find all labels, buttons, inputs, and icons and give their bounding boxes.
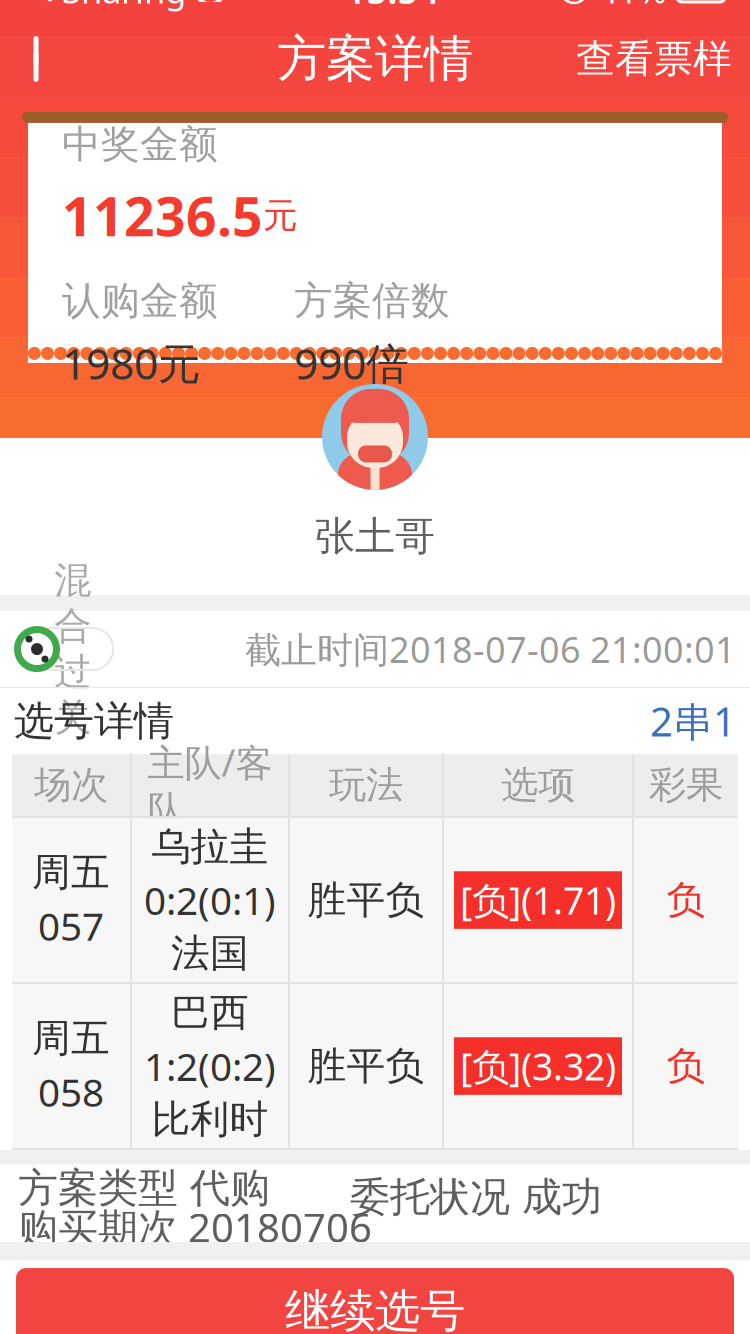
- staticText: 混合过关: [54, 557, 91, 741]
- staticText: 胜平负: [307, 1042, 424, 1090]
- staticText: 周五: [32, 1015, 110, 1062]
- staticText: 选项: [501, 762, 575, 808]
- staticText: 1980元: [62, 334, 201, 391]
- staticText: 方案倍数: [294, 277, 450, 324]
- staticText: 认购金额: [62, 277, 218, 324]
- staticText: [负]: [460, 875, 521, 925]
- staticText: 058: [38, 1066, 104, 1117]
- button[interactable]: 查看票样: [558, 15, 750, 103]
- button[interactable]: 继续选号: [16, 1268, 734, 1334]
- staticText: (3.32): [521, 1041, 616, 1091]
- staticText: 2串1: [650, 694, 736, 748]
- staticText: 990倍: [294, 334, 409, 391]
- staticText: 方案详情: [277, 29, 473, 89]
- staticText: 15:54: [345, 0, 439, 14]
- staticText: 方案类型 代购: [18, 1163, 270, 1213]
- staticText: [负]: [460, 1041, 521, 1091]
- staticText: 主队/客队: [147, 737, 272, 833]
- staticText: 11236.5: [62, 180, 263, 251]
- button[interactable]: 返回: [0, 15, 86, 103]
- staticText: 委托状况 成功: [350, 1172, 602, 1222]
- staticText: 继续选号: [285, 1283, 465, 1334]
- staticText: Sharing: [62, 0, 186, 13]
- staticText: 张土哥: [315, 512, 435, 561]
- staticText: 查看票样: [576, 35, 732, 83]
- staticText: 负: [666, 876, 705, 924]
- staticText: 选号详情: [14, 696, 174, 746]
- staticText: 周五: [32, 849, 110, 896]
- staticText: 057: [38, 900, 104, 951]
- staticText: 1:2(0:2): [144, 1040, 276, 1092]
- staticText: 0:2(0:1): [144, 874, 276, 926]
- staticText: 购买期次 20180706: [18, 1200, 372, 1254]
- staticText: 彩果: [649, 762, 723, 808]
- staticText: (1.71): [521, 875, 616, 925]
- staticText: 41%: [598, 0, 667, 13]
- staticText: 元: [263, 194, 298, 237]
- staticText: 负: [666, 1042, 705, 1090]
- staticText: 乌拉圭: [151, 823, 268, 870]
- staticText: 比利时: [151, 1096, 268, 1143]
- staticText: 截止时间2018-07-06 21:00:01: [245, 625, 736, 673]
- staticText: 玩法: [329, 762, 403, 808]
- staticText: 场次: [34, 762, 108, 808]
- staticText: 中奖金额: [62, 121, 218, 168]
- staticText: 胜平负: [307, 876, 424, 924]
- staticText: 法国: [171, 930, 249, 977]
- staticText: 巴西: [171, 989, 249, 1036]
